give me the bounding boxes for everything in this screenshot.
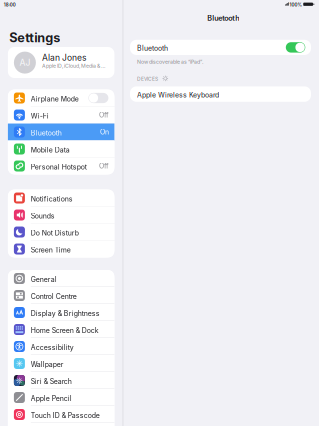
staticText: On <box>100 128 109 136</box>
staticText: Wi-Fi <box>31 112 49 120</box>
staticText: Alan Jones <box>42 52 87 63</box>
staticText: Notifications <box>31 195 73 203</box>
staticText: Off <box>99 162 109 170</box>
button[interactable]: Screen Time <box>8 240 114 257</box>
staticText: Sounds <box>31 212 55 220</box>
staticText: 100% <box>289 2 302 7</box>
button[interactable]: Mobile Data <box>8 140 114 157</box>
staticText: Siri & Search <box>31 377 72 386</box>
staticText: AJ <box>19 57 30 68</box>
button[interactable]: Home Screen & Dock <box>8 321 114 338</box>
staticText: Off <box>99 111 109 119</box>
button[interactable]: Apple Pencil <box>8 389 114 406</box>
staticText: Apple Wireless Keyboard <box>137 91 219 99</box>
button[interactable]: Notifications <box>8 189 114 206</box>
staticText: DEVICES <box>137 76 158 82</box>
staticText: Mobile Data <box>31 146 70 154</box>
button[interactable]: Wi-Fi <box>8 106 114 123</box>
button[interactable]: Display & Brightness <box>8 304 114 321</box>
button[interactable]: Bluetooth <box>130 40 311 55</box>
button[interactable]: Do Not Disturb <box>8 223 114 240</box>
button[interactable]: Bluetooth <box>8 123 114 140</box>
staticText: Bluetooth <box>207 14 239 22</box>
staticText: Apple ID, iCloud, Media & … <box>42 63 105 69</box>
staticText: Wallpaper <box>31 360 64 369</box>
button[interactable]: Sounds <box>8 206 114 223</box>
staticText: Home Screen & Dock <box>31 326 99 335</box>
button[interactable]: Touch ID & Passcode <box>8 406 114 423</box>
staticText: Screen Time <box>31 246 71 254</box>
staticText: Touch ID & Passcode <box>31 411 100 420</box>
button[interactable]: Accessibility <box>8 338 114 355</box>
button[interactable]: Wallpaper <box>8 355 114 372</box>
button[interactable]: Personal Hotspot <box>8 157 114 174</box>
button[interactable]: General <box>8 270 114 287</box>
button[interactable]: Apple Wireless Keyboard <box>130 86 311 102</box>
staticText: Now discoverable as “iPad”. <box>137 59 203 65</box>
staticText: Apple Pencil <box>31 394 72 403</box>
button[interactable]: Siri & Search <box>8 372 114 389</box>
staticText: Display & Brightness <box>31 309 100 318</box>
staticText: Accessibility <box>31 343 74 352</box>
staticText: Personal Hotspot <box>31 163 87 171</box>
button[interactable]: Control Centre <box>8 287 114 304</box>
button[interactable]: Airplane Mode <box>8 89 114 106</box>
staticText: Bluetooth <box>31 129 62 137</box>
staticText: General <box>31 275 57 284</box>
button[interactable]: AJ <box>8 47 114 78</box>
staticText: Settings <box>9 30 60 45</box>
staticText: 18:00 <box>4 2 16 7</box>
staticText: Airplane Mode <box>31 95 79 103</box>
staticText: Do Not Disturb <box>31 229 79 237</box>
staticText: Control Centre <box>31 292 77 301</box>
staticText: Bluetooth <box>137 44 168 52</box>
